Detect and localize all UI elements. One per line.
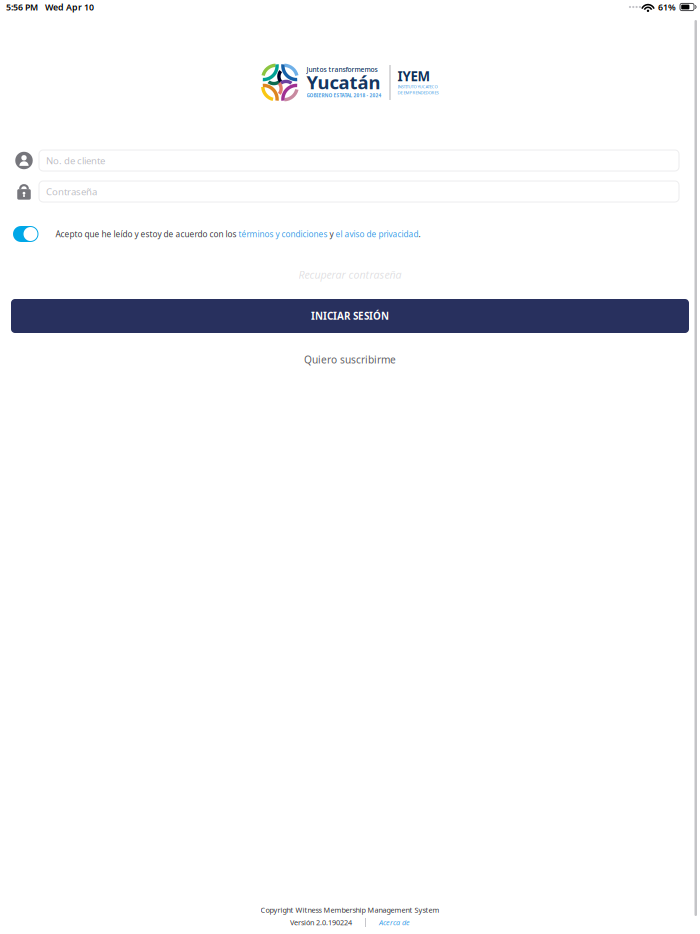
button[interactable]: términos y condiciones (238, 228, 327, 240)
staticText: Contraseña (46, 185, 97, 198)
staticText: Acepto que he leído y estoy de acuerdo c… (55, 228, 238, 240)
staticText: 5:56 PM (6, 1, 38, 13)
button[interactable]: Quiero suscribirme (0, 354, 700, 365)
button[interactable]: Recuperar contraseña (0, 269, 700, 280)
staticText: No. de cliente (46, 154, 105, 167)
button[interactable]: INICIAR SESIÓN (11, 299, 689, 333)
staticText: IYEM (397, 67, 430, 85)
staticText: INICIAR SESIÓN (311, 309, 389, 323)
staticText: 61% (658, 1, 676, 13)
button[interactable]: el aviso de privacidad (335, 228, 418, 240)
staticText: GOBIERNO ESTATAL 2018 - 2024 (306, 92, 381, 98)
staticText: INSTITUTO YUCATECO (397, 84, 437, 89)
staticText: Yucatán (306, 69, 380, 95)
staticText: Quiero suscribirme (304, 353, 396, 366)
staticText: el aviso de privacidad (335, 228, 418, 240)
staticText: Juntos transformemos (306, 65, 377, 74)
staticText: . (418, 228, 420, 240)
staticText: Versión 2.0.190224 (290, 918, 352, 927)
staticText: y (327, 228, 335, 240)
staticText: DE EMPRENDEDORES (397, 90, 438, 95)
staticText: Wed Apr 10 (45, 1, 94, 13)
button[interactable]: No. de cliente (39, 150, 679, 171)
staticText: Recuperar contraseña (298, 267, 401, 282)
button[interactable]: Contraseña (39, 181, 679, 202)
staticText: Acerca de (379, 918, 410, 927)
staticText: Copyright Witness Membership Management … (260, 905, 439, 915)
staticText: términos y condiciones (238, 228, 327, 240)
button[interactable]: Acerca de (379, 918, 410, 927)
button[interactable]: Acepto los términos y condiciones (13, 226, 38, 242)
